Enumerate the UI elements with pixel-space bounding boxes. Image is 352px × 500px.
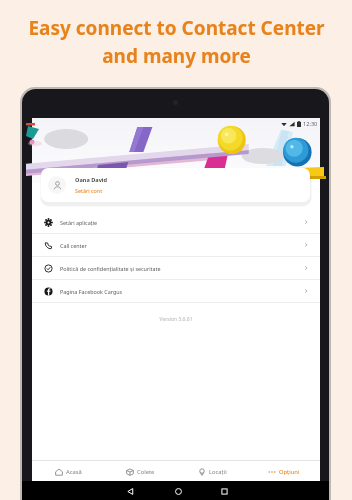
staticText: Call center bbox=[60, 242, 87, 249]
button[interactable]: Home bbox=[170, 483, 186, 499]
staticText: Oana David bbox=[75, 176, 108, 184]
staticText: Locații bbox=[209, 468, 227, 476]
staticText: Acasă bbox=[66, 468, 82, 476]
staticText: and many more bbox=[102, 43, 251, 69]
button[interactable]: Setări aplicație bbox=[32, 211, 320, 233]
staticText: Opțiuni bbox=[279, 468, 300, 476]
button[interactable]: Politică de confidențialitate și securit… bbox=[32, 257, 320, 279]
button[interactable]: Pagina Facebook Cargus bbox=[32, 280, 320, 302]
staticText: Version 5.0.61 bbox=[32, 316, 320, 323]
staticText: Setări aplicație bbox=[60, 219, 98, 226]
staticText: Politică de confidențialitate și securit… bbox=[60, 265, 161, 272]
button[interactable]: Colete bbox=[104, 461, 176, 483]
button[interactable]: Back bbox=[122, 483, 138, 499]
staticText: Easy connect to Contact Center bbox=[28, 15, 325, 41]
button[interactable]: Locații bbox=[176, 461, 248, 483]
button[interactable]: Call center bbox=[32, 234, 320, 256]
staticText: 12:30 bbox=[303, 120, 318, 127]
button[interactable]: Acasă bbox=[32, 461, 104, 483]
staticText: Setări cont bbox=[75, 187, 103, 194]
button[interactable]: Recents bbox=[216, 483, 232, 499]
staticText: Colete bbox=[137, 468, 155, 476]
staticText: Pagina Facebook Cargus bbox=[60, 288, 123, 295]
button[interactable]: Oana David bbox=[41, 168, 310, 202]
button[interactable]: Opțiuni bbox=[248, 461, 320, 483]
